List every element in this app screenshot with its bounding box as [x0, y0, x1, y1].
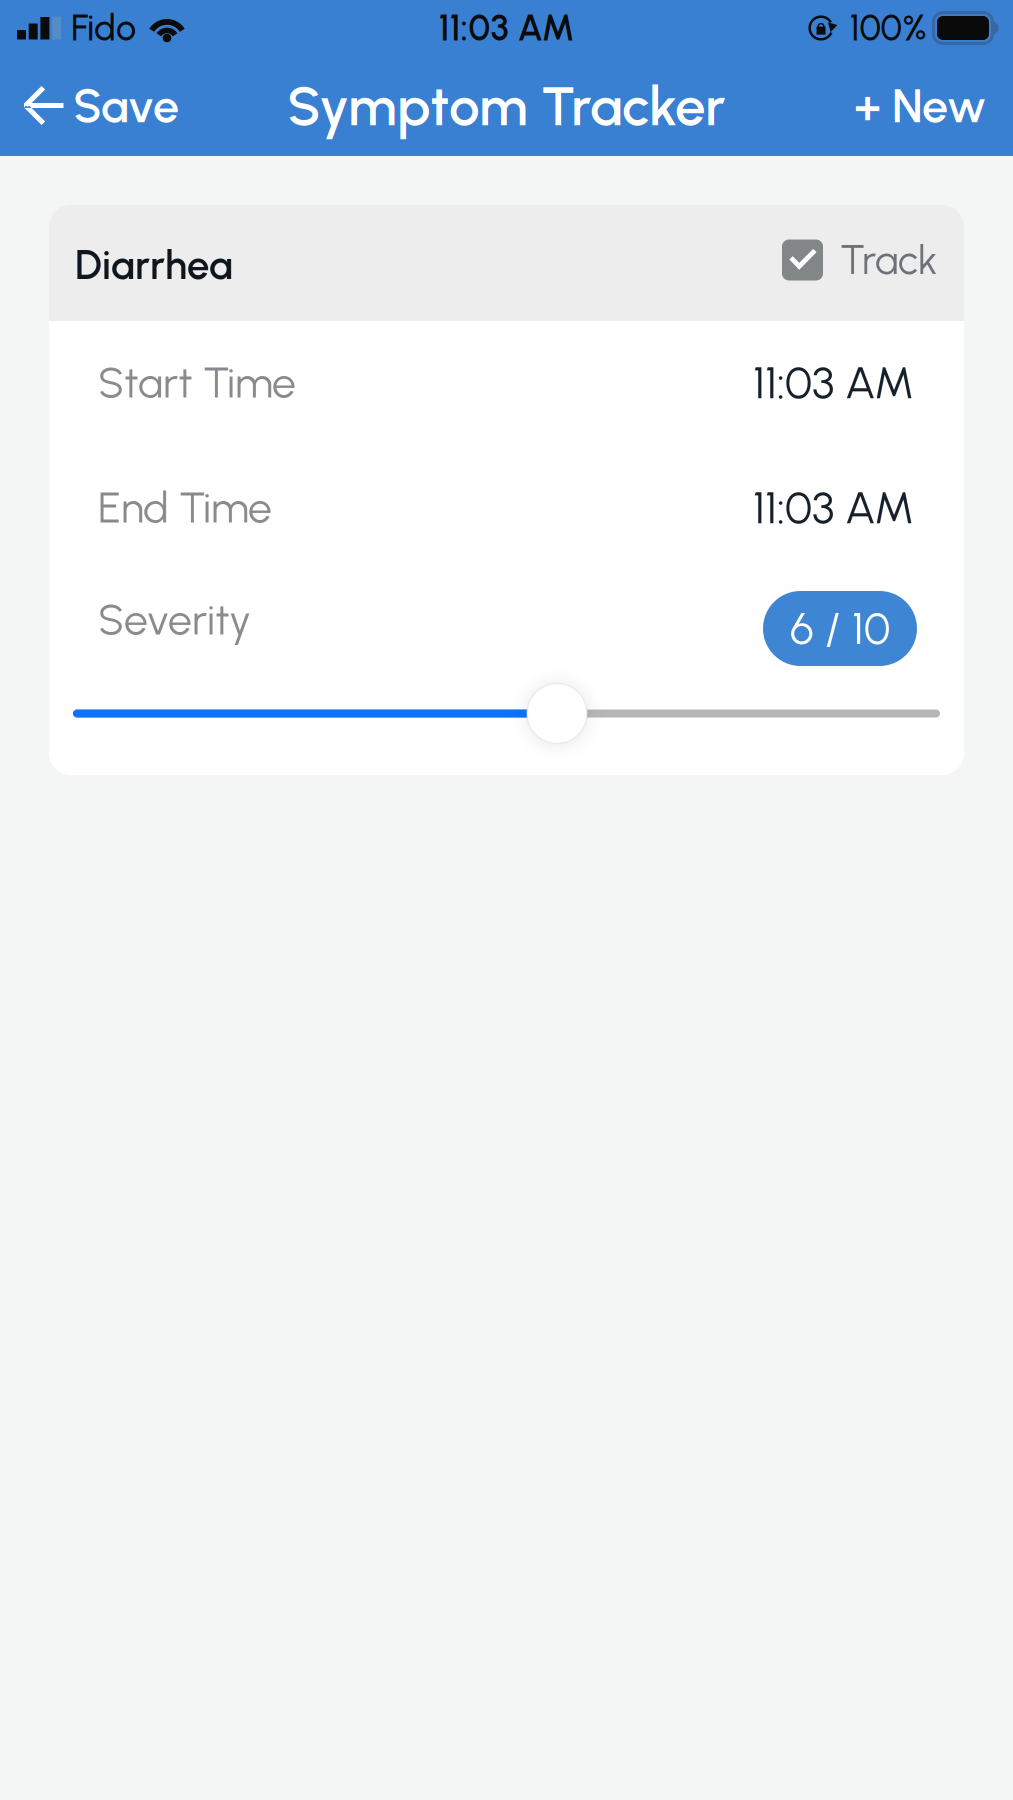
button[interactable]: Track [782, 239, 938, 287]
staticText: Track [840, 236, 938, 284]
staticText: 11:03 AM [753, 355, 914, 410]
staticText: End Time [98, 482, 272, 533]
staticText: 11:03 AM [753, 480, 914, 535]
staticText: Fido [71, 6, 136, 50]
staticText: Save [73, 78, 179, 134]
staticText: Diarrhea [75, 241, 233, 289]
button[interactable]: + New [830, 56, 1013, 156]
staticText: 100% [849, 6, 926, 50]
staticText: Symptom Tracker [287, 73, 726, 139]
button[interactable]: Save [0, 56, 199, 156]
staticText: 6 / 10 [790, 602, 890, 655]
staticText: + New [854, 78, 986, 134]
staticText: Start Time [98, 357, 296, 408]
staticText: Severity [98, 594, 251, 645]
staticText: 11:03 AM [438, 6, 574, 50]
